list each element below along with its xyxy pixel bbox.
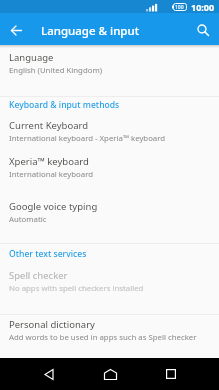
button[interactable]: Language bbox=[0, 49, 219, 78]
staticText: Other text services bbox=[9, 248, 87, 260]
button[interactable] bbox=[27, 358, 71, 390]
staticText: Language bbox=[9, 51, 54, 64]
button[interactable] bbox=[187, 16, 219, 45]
button[interactable] bbox=[0, 16, 32, 45]
staticText: Language & input bbox=[41, 23, 140, 39]
staticText: International keyboard bbox=[9, 169, 93, 180]
staticText: International keyboard - Xperia™ keyboar… bbox=[9, 133, 166, 144]
staticText: 10:00 bbox=[191, 1, 215, 13]
staticText: Keyboard & input methods bbox=[9, 99, 120, 111]
staticText: English (United Kingdom) bbox=[9, 65, 103, 76]
button[interactable] bbox=[149, 358, 193, 390]
staticText: Xperia™ keyboard bbox=[9, 155, 89, 168]
button[interactable]: Xperia™ keyboard bbox=[0, 153, 219, 182]
button[interactable] bbox=[88, 358, 132, 390]
staticText: Add words to be used in apps such as Spe… bbox=[9, 332, 197, 343]
staticText: Spell checker bbox=[9, 269, 68, 282]
button[interactable]: Spell checker bbox=[0, 267, 219, 296]
button[interactable]: Current Keyboard bbox=[0, 117, 219, 146]
staticText: Personal dictionary bbox=[9, 318, 95, 331]
button[interactable]: Personal dictionary bbox=[0, 316, 219, 345]
staticText: No apps with spell checkers installed bbox=[9, 283, 144, 294]
staticText: Automatic bbox=[9, 214, 47, 225]
staticText: Current Keyboard bbox=[9, 119, 89, 132]
staticText: 100 bbox=[175, 4, 184, 11]
staticText: Google voice typing bbox=[9, 200, 98, 213]
button[interactable]: Google voice typing bbox=[0, 198, 219, 227]
